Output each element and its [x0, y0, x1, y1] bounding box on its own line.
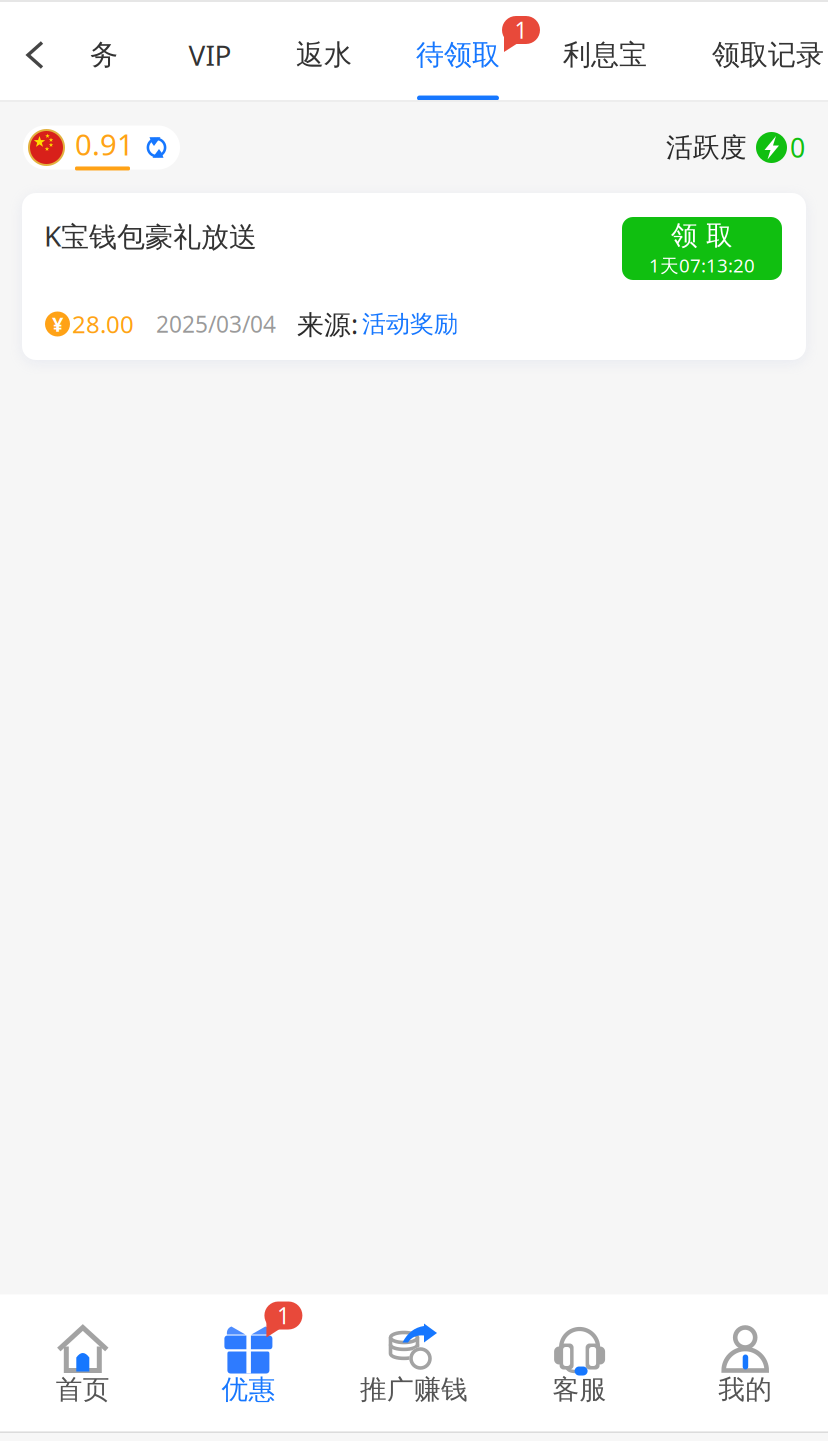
staticText: 0.91 [75, 124, 134, 163]
button[interactable]: VIP [182, 6, 237, 104]
staticText: 利息宝 [563, 38, 647, 72]
button[interactable]: 务 [84, 6, 124, 104]
staticText: 1 [277, 1300, 290, 1330]
button[interactable]: 推广赚钱 [331, 1294, 497, 1431]
staticText: 来源: [297, 306, 358, 342]
staticText: 活动奖励 [362, 309, 458, 339]
button[interactable]: 客服 [497, 1294, 662, 1431]
staticText: 首页 [56, 1373, 110, 1406]
staticText: 返水 [296, 38, 352, 72]
button[interactable]: 0.91 [23, 125, 180, 169]
button[interactable]: 活动奖励 [358, 309, 458, 339]
button[interactable]: 利息宝 [557, 6, 653, 104]
staticText: K宝钱包豪礼放送 [44, 217, 257, 254]
staticText: 1 [514, 15, 527, 45]
button[interactable]: 返水 [290, 6, 358, 104]
staticText: VIP [188, 36, 231, 74]
staticText: 2025/03/04 [156, 309, 276, 339]
button[interactable]: 领取记录 [706, 6, 828, 104]
staticText: 活跃度 [666, 131, 747, 164]
staticText: 领取记录 [712, 38, 824, 72]
staticText: 客服 [553, 1373, 607, 1406]
staticText: 0 [790, 130, 805, 165]
staticText: 我的 [718, 1373, 772, 1406]
button[interactable]: 待领取 [410, 6, 506, 104]
staticText: 28.00 [72, 308, 134, 340]
staticText: 推广赚钱 [360, 1373, 468, 1406]
staticText: 待领取 [416, 38, 500, 72]
staticText: 优惠 [221, 1373, 275, 1406]
staticText: ¥ [52, 311, 63, 337]
button[interactable]: 领 取 [622, 217, 782, 280]
button[interactable]: 我的 [662, 1294, 828, 1431]
staticText: 务 [90, 38, 118, 72]
button[interactable]: Back [2, 6, 68, 104]
button[interactable]: 首页 [0, 1294, 166, 1431]
button[interactable]: 优惠 [166, 1294, 331, 1431]
staticText: 领 取 [671, 219, 733, 252]
staticText: 1天07:13:20 [649, 253, 755, 278]
